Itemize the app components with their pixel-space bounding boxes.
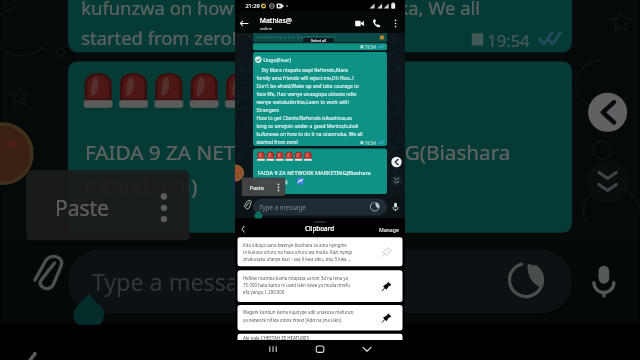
button[interactable]: WhatsApp chat with clipboard panel	[0, 0, 640, 360]
